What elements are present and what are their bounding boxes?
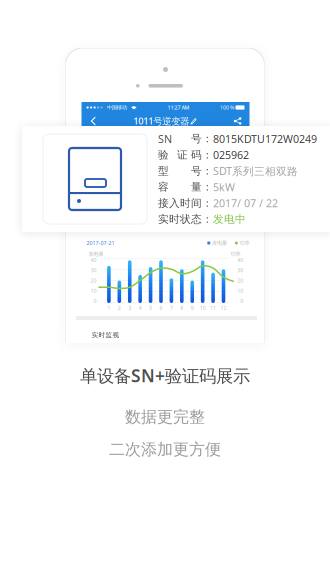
staticText: 8 [180,304,183,311]
staticText: 30 [237,267,243,274]
staticText: 证 码 [177,148,202,161]
staticText: 8015KDTU172W0249 [213,132,317,146]
staticText: ： [202,213,213,226]
staticText: 号 [191,132,202,145]
staticText: 号 [191,164,202,177]
staticText: 40 [90,256,96,264]
staticText: 功率 [230,251,240,257]
staticText: 功率 [239,240,249,246]
staticText: 二次添加更方便 [109,440,221,459]
staticText: 025962 [213,148,249,162]
staticText: 发电量 [88,251,103,257]
staticText: 发电量 [212,240,227,246]
staticText: 40 [237,256,243,264]
staticText: ： [202,180,213,194]
staticText: 5 [149,304,152,311]
staticText: 0 [240,297,243,305]
button[interactable]: Share [228,113,246,129]
staticText: 2017-07-21 [86,239,114,247]
staticText: 数据更完整 [125,407,205,427]
staticText: 型 [158,164,169,177]
staticText: ： [202,132,213,145]
staticText: 实时 [158,213,180,226]
staticText: 中国移动 [107,104,127,111]
staticText: ： [202,148,213,161]
staticText: 30 [90,267,96,274]
staticText: 1011号逆变器 [133,115,189,127]
staticText: 单设备SN+验证码展示 [80,364,250,387]
staticText: 12 [220,304,226,311]
staticText: ： [202,164,213,177]
staticText: SN [158,132,172,146]
staticText: 接入 [158,197,180,210]
staticText: 10 [237,287,243,294]
button[interactable]: Back [84,113,102,129]
staticText: 7 [170,304,173,311]
staticText: 发电中 [213,213,246,226]
staticText: 11 [210,304,216,311]
staticText: 11:27 AM [167,104,189,111]
staticText: 0 [93,297,96,305]
staticText: 时间 [180,197,202,210]
staticText: 3 [128,304,131,311]
staticText: 量 [191,180,202,194]
staticText: 10 [200,304,206,311]
staticText: 4 [139,304,142,311]
staticText: 6 [159,304,162,311]
staticText: 验 [158,148,169,161]
staticText: 1 [107,304,110,311]
staticText: 5kW [213,180,235,194]
staticText: 容 [158,180,169,194]
staticText: ： [202,197,213,210]
staticText: 状态 [180,213,202,226]
staticText: 20 [237,277,243,284]
staticText: SDT系列三相双路 [213,164,298,178]
staticText: 实时监视 [91,331,119,339]
staticText: 2017/ 07 / 22 [213,196,278,210]
staticText: 9 [191,304,194,311]
staticText: 100 % [220,104,234,111]
staticText: 10 [90,287,96,294]
staticText: 20 [90,277,96,284]
staticText: 2 [118,304,121,311]
